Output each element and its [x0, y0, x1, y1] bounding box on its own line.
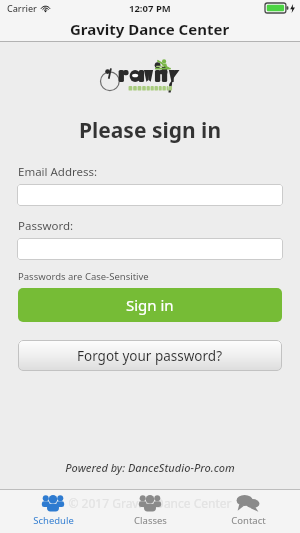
staticText: Gravity Dance Center — [70, 19, 230, 39]
staticText: Please sign in — [0, 116, 300, 145]
button[interactable]: Sign in — [18, 288, 282, 322]
staticText: © 2017 Gravity Dance Center — [0, 495, 300, 511]
staticText: Contact — [231, 514, 266, 527]
staticText: Sign in — [126, 295, 174, 315]
staticText: Password: — [18, 218, 74, 234]
staticText: Forgot your password? — [77, 347, 223, 365]
staticText: Carrier — [7, 2, 37, 14]
button[interactable] — [17, 238, 283, 260]
staticText: Powered by: DanceStudio-Pro.com — [0, 460, 300, 475]
staticText: Passwords are Case-Sensitive — [18, 270, 149, 283]
button[interactable]: Schedule — [8, 493, 98, 527]
button[interactable]: Forgot your password? — [18, 340, 282, 371]
staticText: Schedule — [33, 514, 74, 527]
button[interactable]: Classes — [105, 493, 195, 527]
button[interactable] — [17, 184, 283, 206]
staticText: 12:07 PM — [129, 2, 171, 15]
button[interactable]: Contact — [203, 493, 293, 527]
staticText: Classes — [134, 514, 167, 527]
staticText: Email Address: — [18, 164, 98, 180]
